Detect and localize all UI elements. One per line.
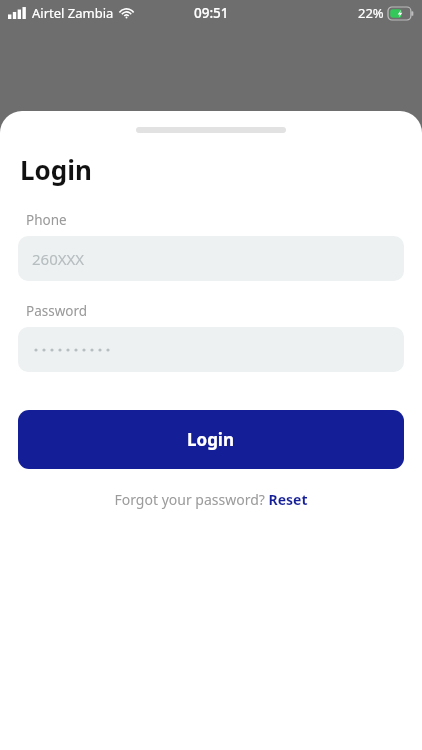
- staticText: Login: [20, 152, 92, 187]
- staticText: Login: [187, 428, 235, 451]
- staticText: Airtel Zambia: [32, 4, 114, 22]
- staticText: Phone: [26, 211, 67, 229]
- staticText: 22%: [358, 4, 384, 22]
- button[interactable]: [18, 327, 404, 372]
- staticText: Forgot your password? Reset: [114, 490, 308, 509]
- staticText: Password: [26, 302, 88, 320]
- button[interactable]: Forgot your password? Reset: [0, 490, 422, 509]
- staticText: 09:51: [194, 4, 229, 22]
- button[interactable]: Login: [18, 410, 404, 469]
- staticText: 260XXX: [32, 249, 85, 269]
- button[interactable]: 260XXX: [18, 236, 404, 281]
